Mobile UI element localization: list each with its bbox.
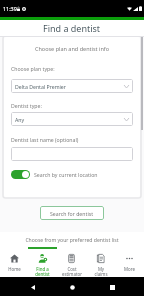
staticText: Choose from your preferred dentist list [25, 237, 119, 244]
button[interactable]: More [115, 247, 144, 277]
button[interactable]: Delta Dental Premier [11, 79, 133, 93]
staticText: Choose plan type: [11, 65, 55, 72]
staticText: Cost estimator [62, 266, 82, 277]
staticText: 11:39 [3, 5, 17, 12]
button[interactable]: Choose from your preferred dentist list [0, 232, 144, 248]
staticText: Find a dentist [43, 22, 101, 34]
button[interactable]: My claims [86, 247, 115, 277]
button[interactable]: Cost estimator [57, 247, 86, 277]
button[interactable]: Search for dentist [40, 206, 104, 220]
button[interactable] [11, 147, 133, 161]
staticText: Find a dentist [35, 266, 50, 277]
staticText: Dentist last name (optional) [11, 136, 79, 143]
staticText: Delta Dental Premier [15, 83, 66, 90]
button[interactable]: Search by current location [11, 170, 98, 179]
staticText: Dentist type: [11, 102, 42, 109]
button[interactable]: Home [65, 280, 79, 294]
button[interactable]: Back [26, 280, 40, 294]
button[interactable]: Home [0, 247, 28, 277]
staticText: Any [15, 116, 25, 123]
staticText: Search for dentist [50, 210, 94, 217]
staticText: Search by current location [34, 171, 98, 178]
staticText: My claims [94, 266, 108, 277]
button[interactable]: Recents [105, 280, 119, 294]
staticText: Home [8, 266, 21, 272]
button[interactable]: Any [11, 112, 133, 126]
staticText: Choose plan and dentist info [4, 45, 140, 52]
staticText: More [124, 266, 135, 272]
button[interactable]: Find a dentist [28, 247, 57, 277]
